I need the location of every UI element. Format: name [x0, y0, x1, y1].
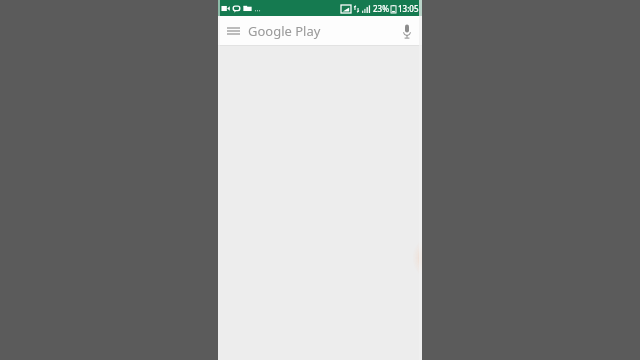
staticText: Google Play: [248, 22, 321, 40]
staticText: 13:05: [398, 3, 419, 14]
button[interactable]: Voice search: [392, 16, 422, 46]
staticText: 23%: [373, 3, 389, 14]
button[interactable]: Open navigation drawer: [218, 16, 248, 46]
button[interactable]: Google Play: [248, 16, 392, 46]
